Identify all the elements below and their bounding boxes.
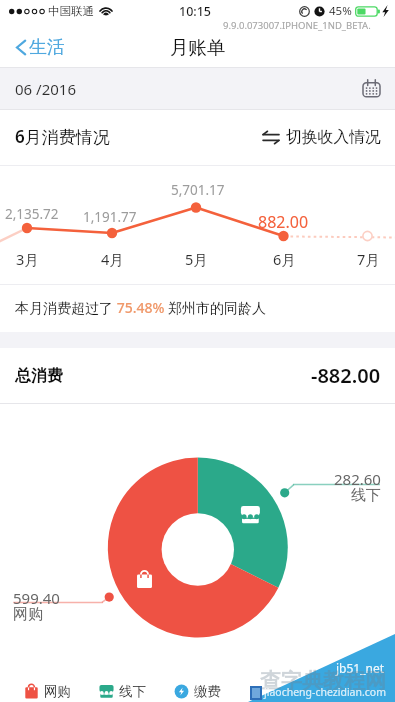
staticText: 4月 [101,249,124,269]
button[interactable]: 生活 [0,31,77,64]
staticText: jiaocheng-chezidian.com [264,685,386,699]
staticText: 1,191.77 [83,208,137,226]
staticText: 6月 [273,249,296,269]
button[interactable]: 线下 [99,680,146,702]
button[interactable]: 06 /2016 [0,67,395,110]
button[interactable]: 网购 [24,680,71,702]
staticText: 5月 [185,249,208,269]
staticText: 282.60 [334,469,381,489]
staticText: 599.40 [13,588,60,608]
staticText: 线下 [351,486,381,505]
button[interactable]: 缴费 [174,680,221,702]
staticText: 6月消费情况 [15,125,110,148]
staticText: 本月消费超过了 75.48% 郑州市的同龄人 [15,298,267,317]
staticText: 切换收入情况 [286,127,381,147]
staticText: 3月 [16,249,39,269]
staticText: 月账单 [170,36,226,59]
staticText: 5,701.17 [171,181,225,199]
staticText: 生活 [29,36,65,59]
staticText: 网购 [44,683,71,700]
staticText: 7月 [357,249,380,269]
staticText: jb51_net [336,660,385,676]
staticText: 45% [329,3,352,19]
staticText: 线下 [119,683,146,700]
staticText: 缴费 [194,683,221,700]
button[interactable]: 切换收入情况 [262,121,395,153]
staticText: 网购 [13,605,43,624]
staticText: 882.00 [258,211,309,233]
other: Pick month [362,79,381,98]
staticText: -882.00 [311,362,381,389]
staticText: 总消费 [15,366,63,386]
staticText: 2,135.72 [5,205,59,223]
staticText: 10:15 [179,3,212,20]
staticText: 查字典教程网 [260,668,386,694]
staticText: 中国联通 [48,4,94,18]
staticText: 9.9.0.073007.IPHONE_1ND_BETA. [223,19,371,32]
staticText: 06 /2016 [15,79,76,99]
